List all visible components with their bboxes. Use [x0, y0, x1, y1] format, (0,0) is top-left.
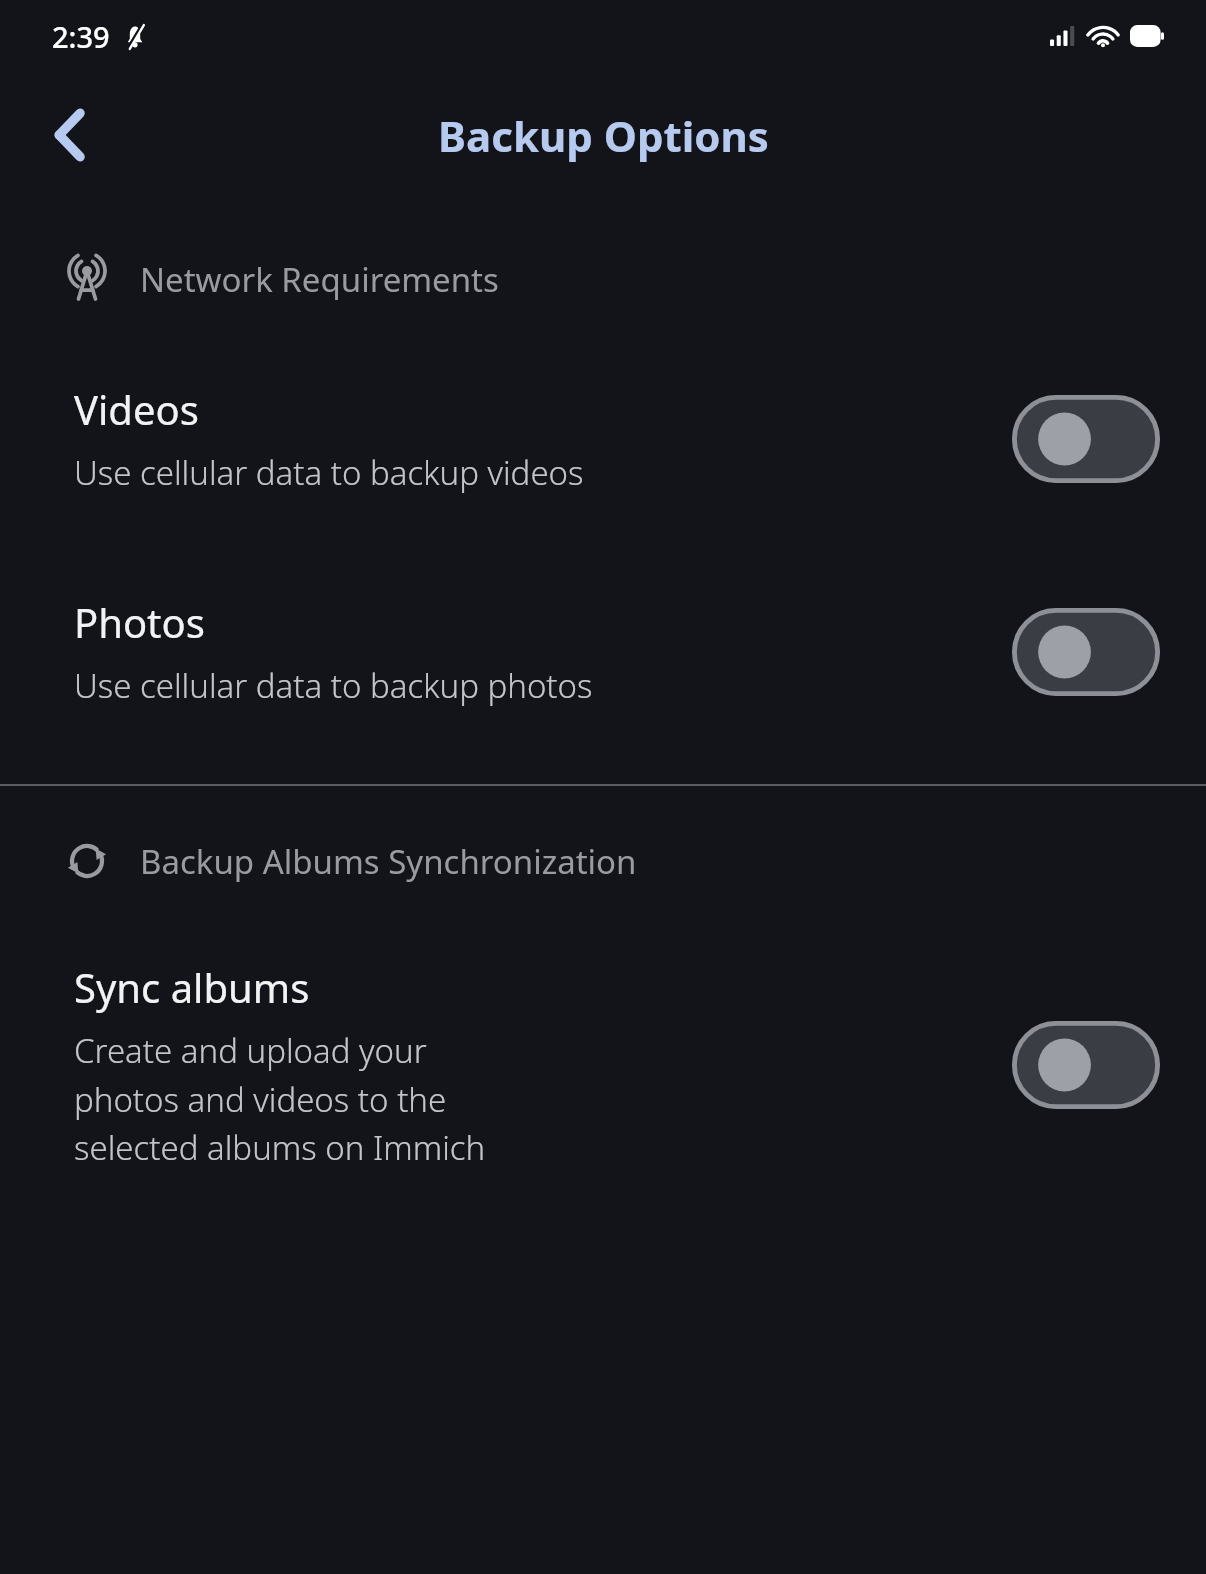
button[interactable]: Toggle [1012, 608, 1160, 696]
staticText: 2:39 [52, 17, 110, 56]
staticText: Create and upload your photos and videos… [74, 1028, 524, 1169]
staticText: Use cellular data to backup photos [74, 663, 774, 708]
button[interactable]: Sync albums [0, 960, 1206, 1169]
button[interactable]: Videos [0, 382, 1206, 495]
staticText: Videos [74, 382, 199, 436]
staticText: Backup Options [438, 107, 769, 164]
button[interactable]: Toggle [1012, 1021, 1160, 1109]
staticText: Use cellular data to backup videos [74, 450, 774, 495]
staticText: Sync albums [74, 960, 310, 1014]
staticText: Network Requirements [140, 257, 499, 302]
staticText: Backup Albums Synchronization [140, 839, 637, 884]
button[interactable]: Back [40, 105, 100, 165]
button[interactable]: Photos [0, 595, 1206, 708]
button[interactable]: Toggle [1012, 395, 1160, 483]
staticText: Photos [74, 595, 205, 649]
